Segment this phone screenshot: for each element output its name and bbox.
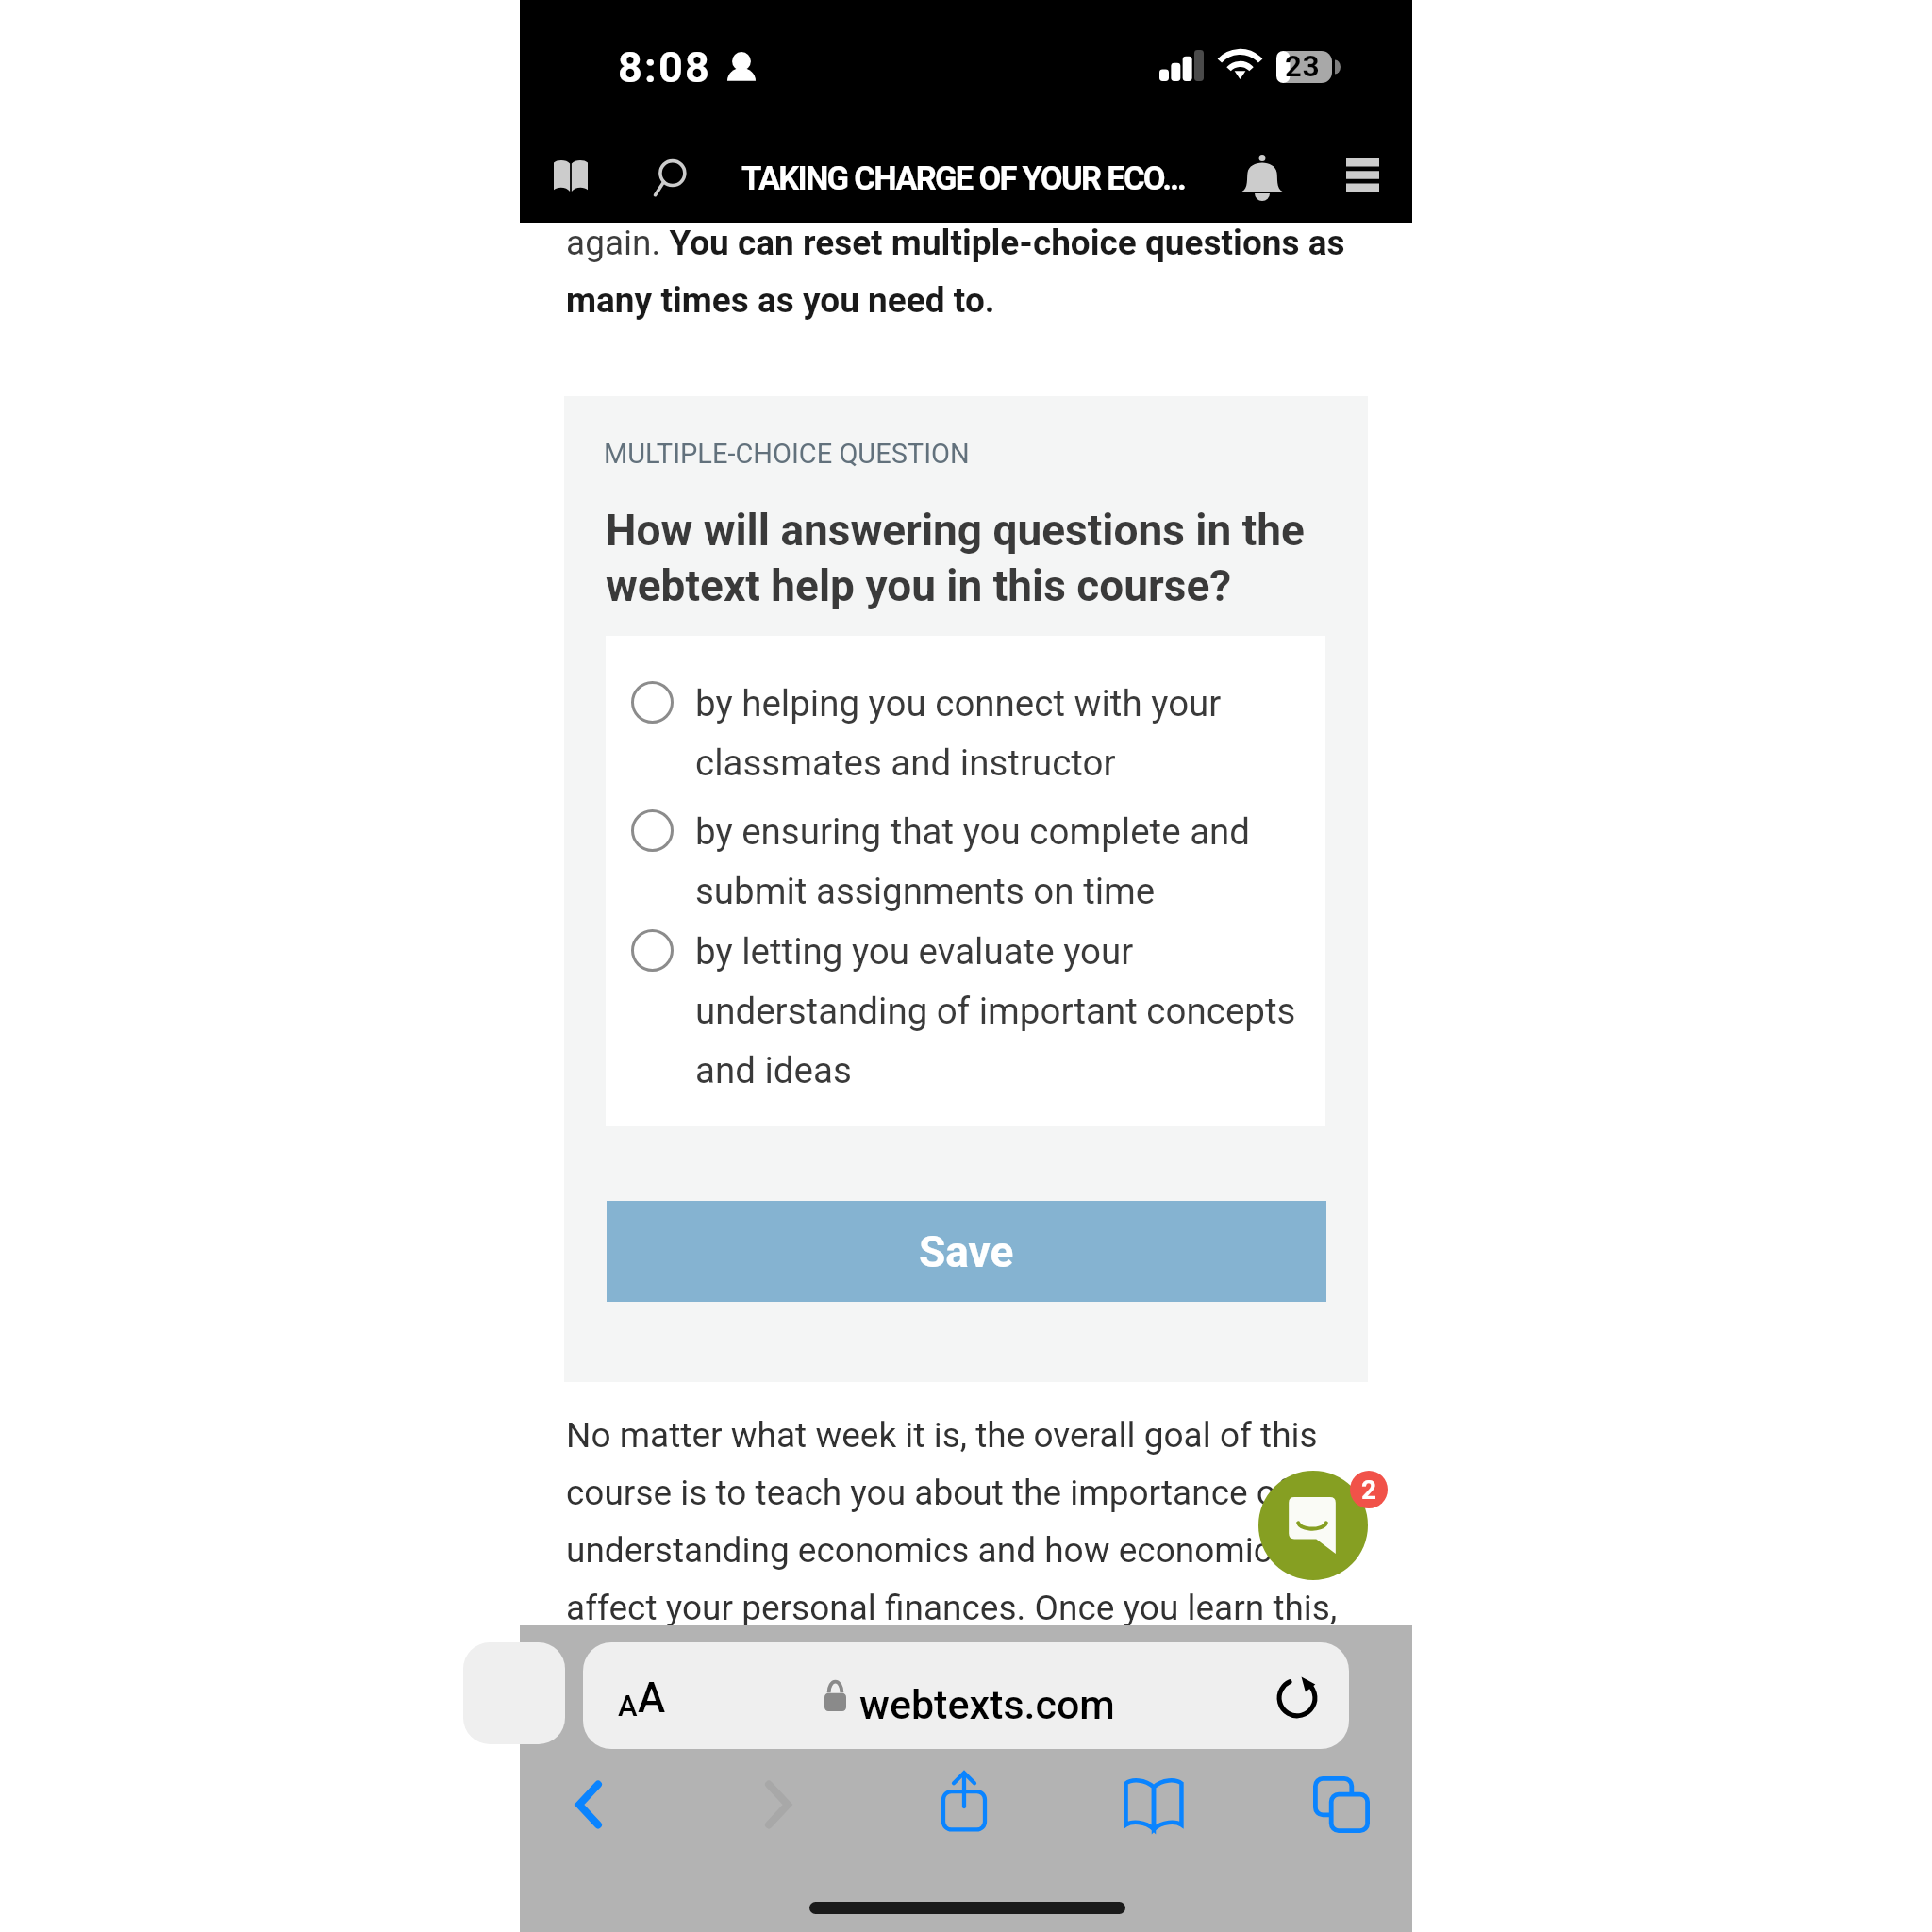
button[interactable]: Tabs	[1290, 1753, 1393, 1857]
button[interactable]: by letting you evaluate your understandi…	[606, 924, 1325, 1107]
staticText: A	[618, 1689, 638, 1723]
button[interactable]: Open chat	[1258, 1471, 1368, 1580]
staticText: Save	[919, 1226, 1014, 1277]
staticText: 2	[1361, 1474, 1377, 1506]
button[interactable]: Back	[537, 1753, 641, 1857]
staticText: A	[638, 1674, 666, 1723]
button[interactable]: Notifications	[1205, 130, 1320, 225]
button[interactable]: Save	[607, 1201, 1326, 1302]
staticText: 8:08	[618, 42, 711, 92]
staticText: TAKING CHARGE OF YOUR ECO…	[741, 159, 1185, 197]
button[interactable]: TAKING CHARGE OF YOUR ECO…	[714, 127, 1205, 223]
staticText: How will answering questions in the webt…	[606, 505, 1332, 611]
button[interactable]: Share	[912, 1750, 1016, 1854]
staticText: webtexts.com	[859, 1681, 1115, 1728]
button[interactable]: A	[583, 1642, 1349, 1749]
button[interactable]: Menu	[1312, 127, 1412, 223]
staticText: by ensuring that you complete and submit…	[695, 810, 1318, 912]
button[interactable]: Bookmarks	[1102, 1753, 1206, 1857]
button[interactable]: Table of contents	[519, 127, 623, 223]
staticText: MULTIPLE-CHOICE QUESTION	[604, 438, 970, 470]
staticText: by letting you evaluate your understandi…	[695, 930, 1318, 1091]
staticText: No matter what week it is, the overall g…	[566, 1415, 1373, 1628]
button[interactable]: Search	[625, 131, 714, 226]
staticText: by helping you connect with your classma…	[695, 682, 1318, 784]
staticText: again. You can reset multiple-choice que…	[566, 223, 1374, 321]
staticText: 23	[1285, 49, 1321, 83]
button[interactable]: by helping you connect with your classma…	[606, 676, 1325, 799]
button[interactable]: by ensuring that you complete and submit…	[606, 805, 1325, 927]
